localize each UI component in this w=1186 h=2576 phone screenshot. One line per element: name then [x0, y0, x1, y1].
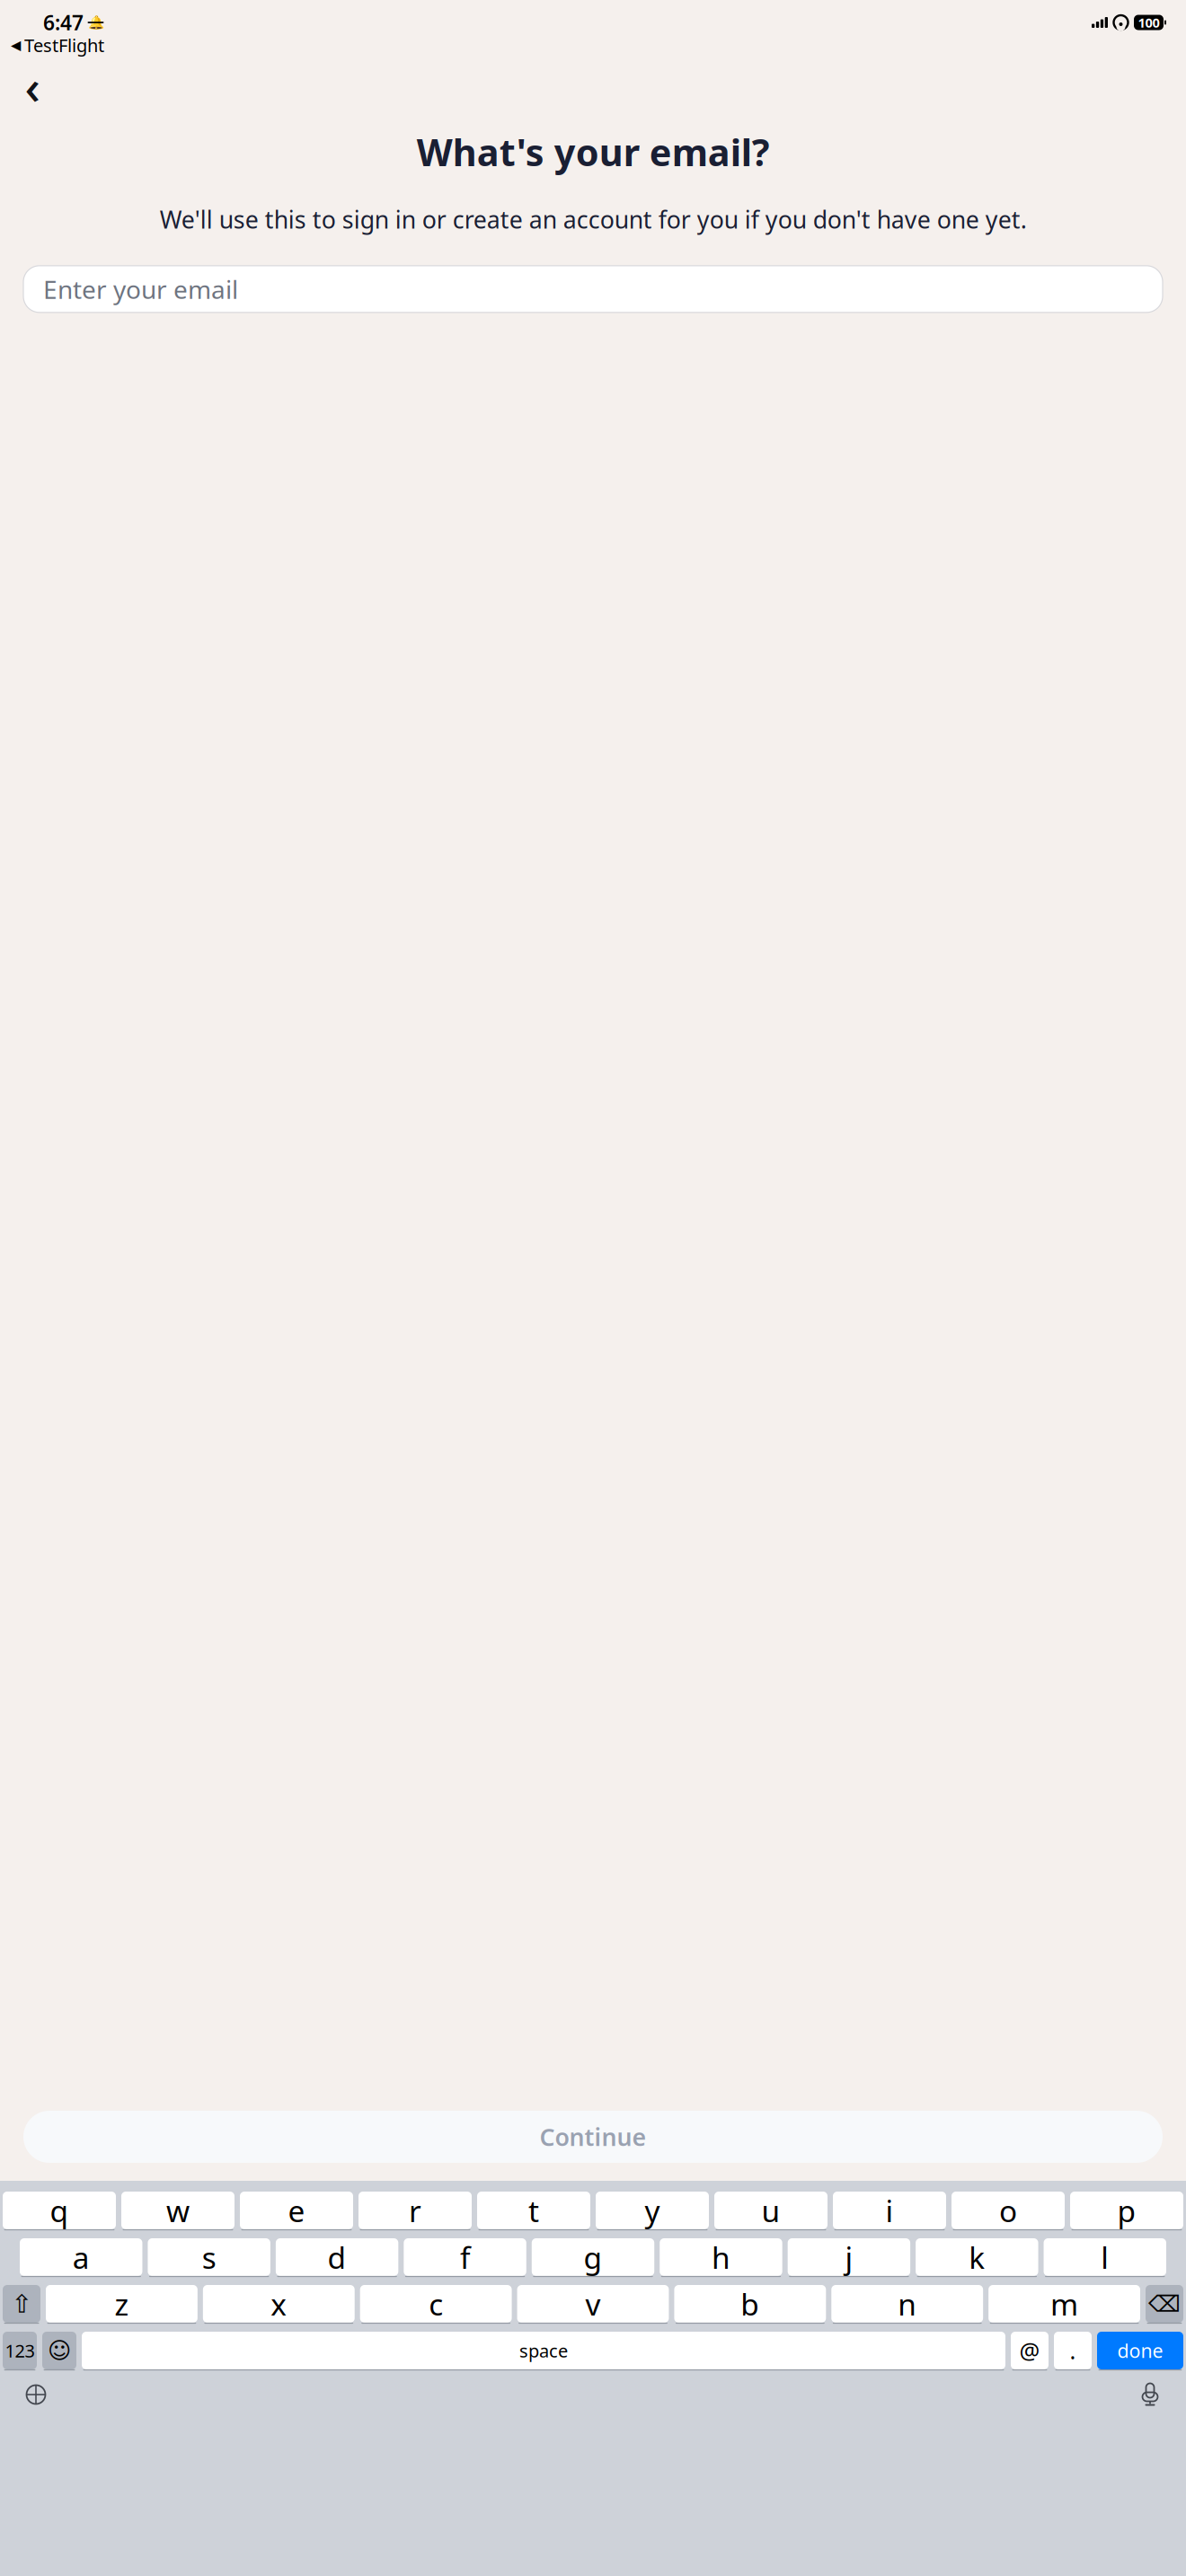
staticText: done	[1117, 2338, 1163, 2363]
button[interactable]: z	[46, 2285, 198, 2323]
staticText: Enter your email	[43, 272, 238, 306]
staticText: x	[271, 2284, 287, 2324]
staticText: l	[1101, 2237, 1109, 2277]
button[interactable]: u	[714, 2192, 828, 2229]
button[interactable]: .	[1054, 2332, 1092, 2369]
button[interactable]: Back	[13, 66, 52, 106]
staticText: 100	[1138, 14, 1159, 31]
staticText: ⇧	[11, 2290, 32, 2318]
staticText: c	[429, 2284, 443, 2324]
button[interactable]: r	[358, 2192, 472, 2229]
button[interactable]: p	[1070, 2192, 1183, 2229]
staticText: .	[1070, 2335, 1076, 2366]
button[interactable]: o	[951, 2192, 1065, 2229]
staticText: ‹	[25, 54, 40, 118]
staticText: y	[645, 2191, 660, 2230]
button[interactable]: done	[1097, 2332, 1183, 2369]
button[interactable]: a	[20, 2238, 142, 2276]
button[interactable]: n	[831, 2285, 983, 2323]
staticText: ⌫	[1148, 2291, 1181, 2317]
button[interactable]: Shift	[3, 2285, 40, 2323]
button[interactable]: k	[916, 2238, 1038, 2276]
button[interactable]: Dictate	[1130, 2377, 1170, 2413]
button[interactable]: q	[3, 2192, 116, 2229]
staticText: s	[202, 2237, 216, 2277]
staticText: 6:47	[43, 9, 84, 36]
button[interactable]: Delete	[1146, 2285, 1183, 2323]
button[interactable]: Next keyboard	[16, 2377, 56, 2413]
staticText: b	[741, 2284, 760, 2324]
staticText: o	[999, 2191, 1017, 2230]
button[interactable]: w	[121, 2192, 235, 2229]
button[interactable]: e	[240, 2192, 353, 2229]
staticText: TestFlight	[24, 33, 104, 57]
button[interactable]: Continue	[23, 2111, 1163, 2163]
staticText: r	[409, 2191, 421, 2230]
button[interactable]: m	[988, 2285, 1140, 2323]
button[interactable]: s	[148, 2238, 270, 2276]
staticText: d	[328, 2237, 346, 2277]
staticText: v	[585, 2284, 601, 2324]
staticText: Continue	[540, 2121, 646, 2153]
staticText: u	[761, 2191, 780, 2230]
staticText: g	[584, 2237, 602, 2277]
button[interactable]: j	[788, 2238, 910, 2276]
staticText: space	[519, 2339, 568, 2363]
button[interactable]: y	[596, 2192, 709, 2229]
staticText: n	[898, 2284, 917, 2324]
button[interactable]: Emoji	[42, 2332, 76, 2369]
staticText: i	[885, 2191, 894, 2230]
staticText: e	[288, 2191, 305, 2230]
button[interactable]: h	[660, 2238, 782, 2276]
staticText: q	[50, 2191, 69, 2230]
staticText: a	[73, 2237, 90, 2277]
staticText: h	[712, 2237, 730, 2277]
staticText: @	[1019, 2335, 1040, 2366]
staticText: k	[969, 2237, 985, 2277]
staticText: t	[528, 2191, 539, 2230]
button[interactable]: @	[1011, 2332, 1049, 2369]
staticText: f	[460, 2237, 470, 2277]
button[interactable]: x	[203, 2285, 355, 2323]
staticText: z	[114, 2284, 129, 2324]
staticText: ☺	[48, 2338, 71, 2363]
button[interactable]: b	[674, 2285, 826, 2323]
staticText: m	[1050, 2284, 1078, 2324]
button[interactable]: c	[360, 2285, 512, 2323]
staticText: j	[845, 2237, 853, 2277]
button[interactable]: 123	[3, 2332, 37, 2369]
button[interactable]: v	[517, 2285, 669, 2323]
button[interactable]: space	[82, 2332, 1005, 2369]
button[interactable]: g	[532, 2238, 654, 2276]
staticText: We'll use this to sign in or create an a…	[159, 203, 1027, 235]
staticText: p	[1117, 2191, 1136, 2230]
staticText: ◀	[11, 38, 21, 53]
button[interactable]: i	[833, 2192, 946, 2229]
button[interactable]: f	[404, 2238, 526, 2276]
button[interactable]: d	[276, 2238, 398, 2276]
staticText: w	[166, 2191, 190, 2230]
button[interactable]: Enter your email	[23, 266, 1163, 312]
button[interactable]: l	[1044, 2238, 1166, 2276]
staticText: 123	[5, 2339, 35, 2363]
staticText: 🔔	[88, 15, 104, 30]
staticText: What's your email?	[416, 127, 770, 176]
button[interactable]: t	[477, 2192, 590, 2229]
